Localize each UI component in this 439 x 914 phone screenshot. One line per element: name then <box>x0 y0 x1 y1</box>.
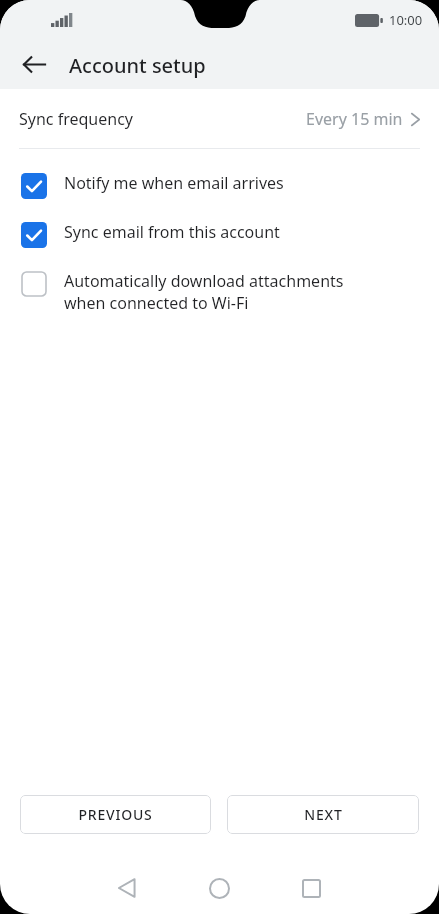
button[interactable]: NEXT <box>227 795 419 834</box>
button[interactable]: Automatically download attachments <box>0 267 439 316</box>
button[interactable]: Recent apps <box>276 862 346 914</box>
button[interactable]: Back <box>92 862 162 914</box>
button[interactable]: PREVIOUS <box>20 795 211 834</box>
staticText: Notify me when email arrives <box>64 172 284 194</box>
staticText: Account setup <box>69 52 206 79</box>
staticText: Sync frequency <box>19 108 133 130</box>
staticText: NEXT <box>304 805 343 824</box>
button[interactable]: Back <box>12 42 56 86</box>
staticText: Every 15 min <box>306 108 403 130</box>
button[interactable]: Sync frequency <box>0 89 439 148</box>
staticText: when connected to Wi-Fi <box>64 292 249 314</box>
button[interactable]: Sync email from this account <box>0 218 439 250</box>
staticText: PREVIOUS <box>78 805 153 824</box>
button[interactable]: Notify me when email arrives <box>0 169 439 201</box>
staticText: Sync email from this account <box>64 221 280 243</box>
staticText: Automatically download attachments <box>64 270 344 292</box>
button[interactable]: Home <box>184 862 254 914</box>
staticText: 10:00 <box>389 11 423 29</box>
